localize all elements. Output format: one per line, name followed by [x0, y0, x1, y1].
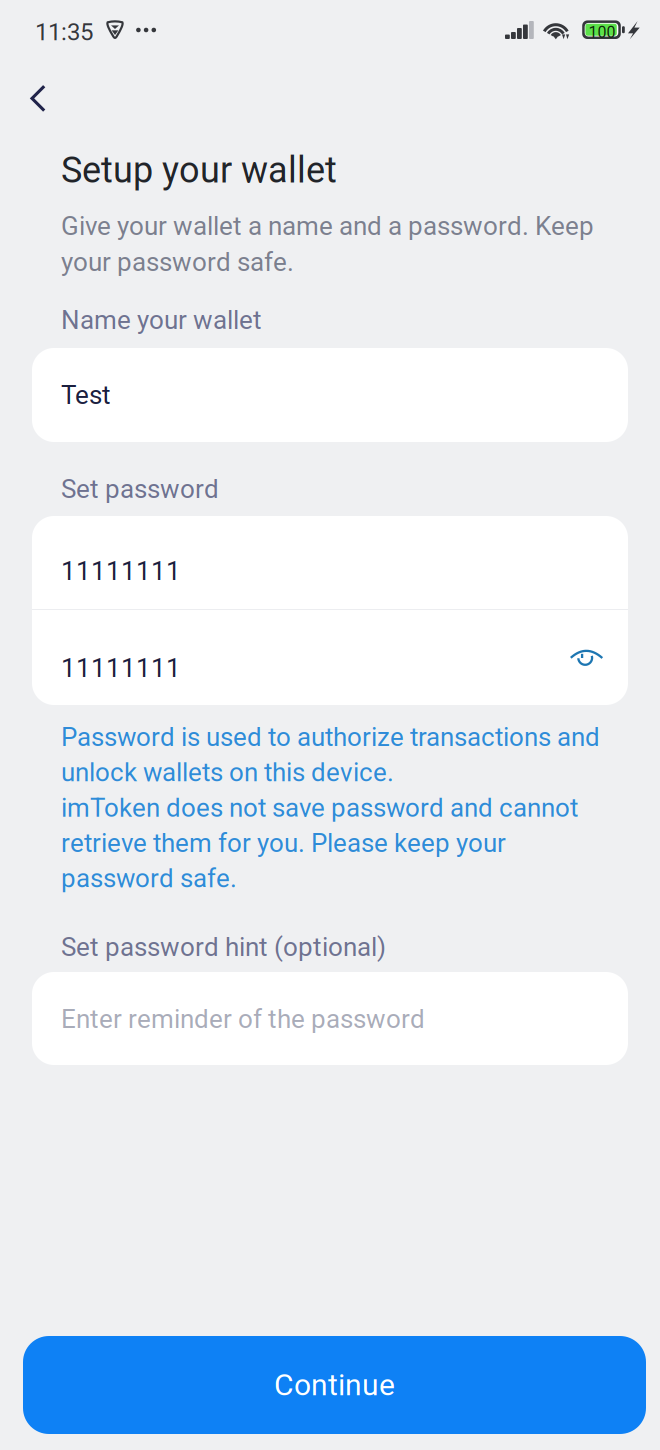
staticText: Test [61, 380, 111, 410]
staticText: Set password hint (optional) [61, 932, 386, 962]
staticText: Set password [61, 474, 219, 504]
staticText: 11111111 [61, 653, 181, 683]
button[interactable]: Show password [562, 640, 612, 674]
staticText: Password is used to authorize transactio… [61, 722, 600, 894]
staticText: 11111111 [61, 556, 181, 586]
button[interactable]: Back [0, 0, 76, 136]
staticText: Give your wallet a name and a password. … [61, 211, 594, 277]
staticText: Name your wallet [61, 305, 262, 335]
staticText: Setup your wallet [61, 149, 337, 191]
staticText: 100 [589, 23, 616, 42]
staticText: Enter reminder of the password [61, 1004, 425, 1034]
staticText: 11:35 [35, 18, 93, 46]
staticText: Continue [274, 1367, 395, 1403]
button[interactable]: Continue [23, 1336, 646, 1434]
